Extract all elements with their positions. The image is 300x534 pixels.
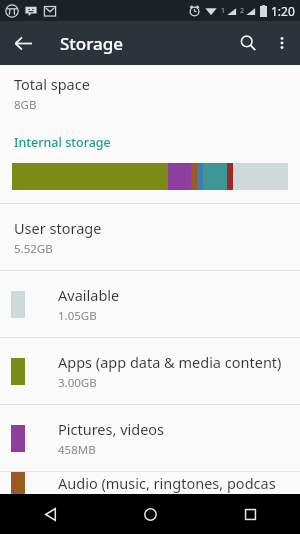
staticText: 8GB bbox=[14, 97, 37, 113]
staticText: 5.52GB bbox=[14, 241, 53, 257]
staticText: Storage bbox=[60, 32, 124, 55]
button[interactable]: Apps (app data & media content) bbox=[0, 338, 300, 404]
staticText: Audio (music, ringtones, podcas bbox=[58, 473, 276, 493]
button[interactable]: Recent apps bbox=[200, 494, 300, 534]
button[interactable]: Search bbox=[230, 25, 266, 61]
staticText: Internal storage bbox=[14, 134, 111, 151]
staticText: 458MB bbox=[58, 442, 96, 458]
button[interactable]: Back bbox=[0, 494, 100, 534]
staticText: Total space bbox=[14, 74, 90, 94]
staticText: User storage bbox=[14, 218, 102, 238]
button[interactable]: Total space bbox=[0, 65, 300, 113]
staticText: 1.05GB bbox=[58, 308, 97, 324]
button[interactable]: Home bbox=[100, 494, 200, 534]
button[interactable]: Audio (music, ringtones, podcas bbox=[0, 472, 300, 494]
staticText: 2 bbox=[240, 6, 245, 16]
button[interactable]: User storage bbox=[0, 204, 300, 270]
button[interactable]: Navigate up bbox=[6, 26, 40, 60]
staticText: Available bbox=[58, 285, 120, 305]
button[interactable]: Available bbox=[0, 271, 300, 337]
staticText: 1:20 bbox=[271, 3, 295, 19]
staticText: Pictures, videos bbox=[58, 419, 165, 439]
button[interactable]: Pictures, videos bbox=[0, 405, 300, 471]
button[interactable]: More options bbox=[266, 27, 298, 59]
staticText: 1 bbox=[221, 6, 226, 16]
staticText: Apps (app data & media content) bbox=[58, 352, 282, 372]
staticText: 3.00GB bbox=[58, 375, 97, 391]
